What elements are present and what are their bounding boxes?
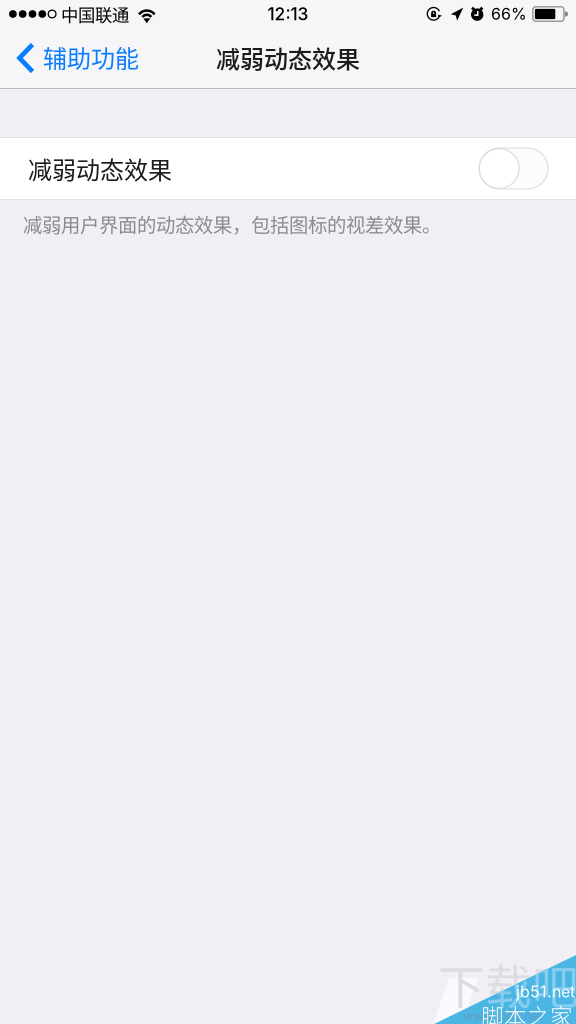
staticText: jb51.net: [516, 982, 575, 1001]
button[interactable]: 减弱动态效果: [0, 138, 576, 199]
staticText: 减弱动态效果: [28, 151, 172, 186]
staticText: www.jb51.net: [463, 1008, 542, 1023]
staticText: 12:13: [267, 3, 308, 24]
staticText: 辅助功能: [43, 40, 139, 74]
staticText: 减弱动态效果: [216, 40, 360, 75]
staticText: 减弱用户界面的动态效果，包括图标的视差效果。: [23, 210, 441, 238]
staticText: 下载吧: [438, 950, 576, 1018]
staticText: 脚本之家: [481, 999, 573, 1024]
staticText: 中国联通: [61, 1, 129, 27]
button[interactable]: 辅助功能: [0, 36, 151, 88]
staticText: 下载吧: [438, 950, 576, 1018]
staticText: 66%: [491, 4, 527, 24]
